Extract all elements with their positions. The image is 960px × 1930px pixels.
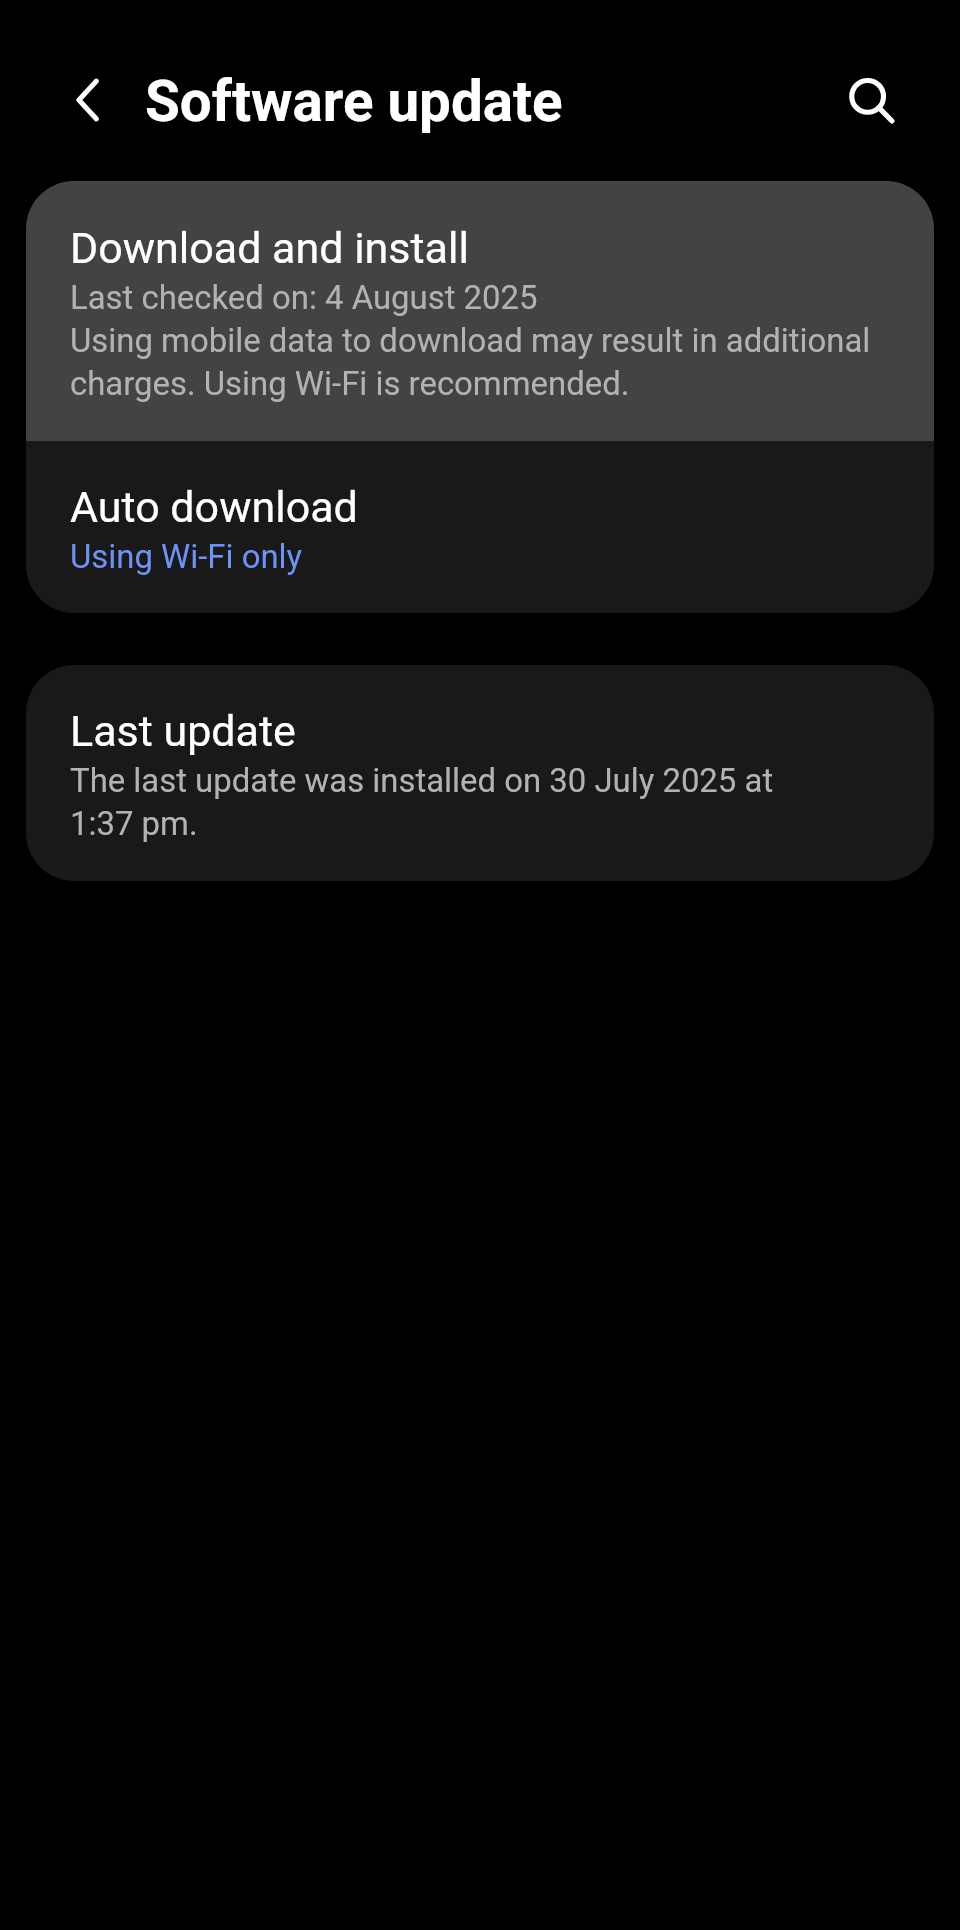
button[interactable]: Last update [26,665,934,881]
button[interactable]: Auto download [26,441,934,613]
staticText: Last checked on: 4 August 2025 Using mob… [70,275,871,404]
button[interactable]: Search [835,64,909,138]
staticText: Software update [145,69,563,135]
staticText: Using Wi-Fi only [70,534,303,577]
button[interactable]: Navigate up [52,63,126,137]
staticText: The last update was installed on 30 July… [70,758,774,844]
staticText: Download and install [70,223,469,273]
staticText: Auto download [70,482,358,532]
button[interactable]: Download and install [26,181,934,441]
staticText: Last update [70,706,296,756]
